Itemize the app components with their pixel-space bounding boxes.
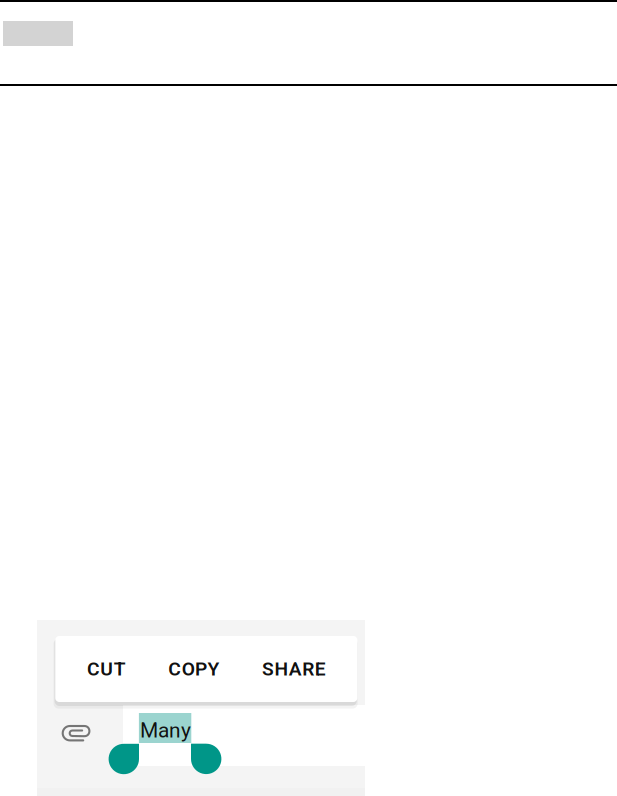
button[interactable]: Attach file [53, 712, 100, 755]
staticText: Many [140, 718, 191, 743]
button[interactable]: Many [139, 713, 191, 743]
staticText: SHARE [262, 658, 326, 680]
button[interactable]: SHARE [241, 636, 347, 702]
staticText: CUT [87, 658, 126, 680]
button[interactable]: CUT [66, 636, 147, 702]
button[interactable]: COPY [147, 636, 241, 702]
staticText: COPY [168, 658, 220, 680]
